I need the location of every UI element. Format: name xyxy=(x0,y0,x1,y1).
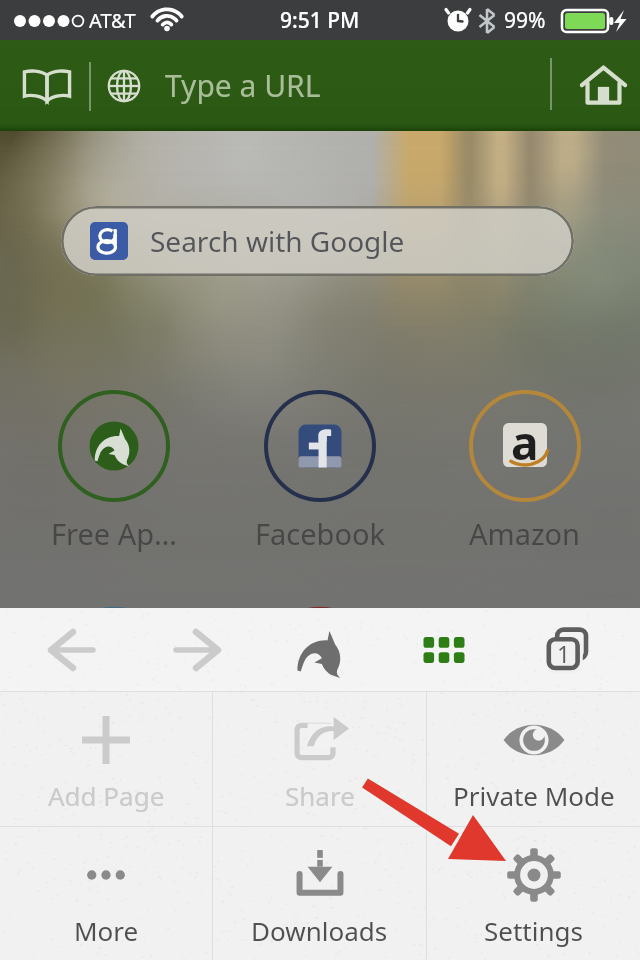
staticText: Downloads xyxy=(251,913,388,948)
staticText: 9:51 PM xyxy=(280,6,360,35)
staticText: 99% xyxy=(504,6,546,35)
button[interactable]: More xyxy=(0,827,212,960)
button[interactable]: Forward xyxy=(155,608,239,691)
staticText: Type a URL xyxy=(165,65,321,106)
button[interactable]: Settings xyxy=(427,827,640,960)
button[interactable]: Type a URL xyxy=(91,40,549,131)
staticText: Amazon xyxy=(469,514,581,553)
staticText: a xyxy=(511,411,539,474)
staticText: Search with Google xyxy=(150,222,405,260)
staticText: Settings xyxy=(484,913,583,948)
button[interactable]: Add ons xyxy=(402,608,486,691)
staticText: Free Ap… xyxy=(51,514,178,553)
button[interactable]: Free Ap… xyxy=(24,389,204,549)
staticText: Share xyxy=(285,778,355,813)
staticText: 1 xyxy=(557,638,571,669)
button[interactable]: a xyxy=(435,389,615,549)
button[interactable]: Dolphin menu xyxy=(278,608,362,691)
button[interactable]: Back xyxy=(30,608,114,691)
button[interactable]: Private Mode xyxy=(427,692,640,826)
button[interactable]: Add Page xyxy=(0,692,212,826)
button[interactable]: Search with Google xyxy=(61,206,574,276)
button[interactable]: Facebook xyxy=(230,389,410,549)
staticText: Facebook xyxy=(255,514,386,553)
staticText: Private Mode xyxy=(453,778,615,813)
button[interactable]: Tabs xyxy=(526,608,610,691)
staticText: AT&T xyxy=(89,7,136,34)
button[interactable]: Share xyxy=(213,692,426,826)
staticText: More xyxy=(74,913,139,948)
button[interactable]: Home xyxy=(566,40,640,131)
button[interactable]: Bookmarks xyxy=(4,40,90,131)
staticText: Add Page xyxy=(48,778,165,813)
button[interactable]: Downloads xyxy=(213,827,426,960)
